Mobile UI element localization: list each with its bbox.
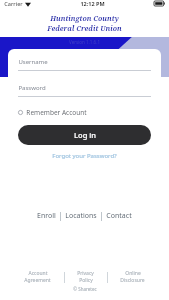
button[interactable]: Remember Account bbox=[18, 108, 87, 117]
button[interactable]: Privacy bbox=[77, 270, 94, 284]
staticText: Account bbox=[28, 270, 48, 277]
staticText: Disclosure bbox=[120, 277, 145, 284]
button[interactable]: Log in bbox=[18, 125, 151, 145]
staticText: Log in bbox=[74, 130, 96, 140]
staticText: Online bbox=[125, 270, 141, 277]
other: Battery bbox=[154, 1, 165, 6]
staticText: Carrier bbox=[4, 0, 23, 7]
staticText: Enroll bbox=[37, 211, 56, 221]
staticText: Locations bbox=[65, 211, 97, 221]
staticText: Policy bbox=[79, 277, 93, 284]
button[interactable]: Contact bbox=[102, 211, 136, 221]
staticText: Agreement bbox=[24, 277, 51, 284]
staticText: Huntington County bbox=[50, 14, 119, 24]
button[interactable]: Locations bbox=[61, 211, 101, 221]
staticText: © Sharetec bbox=[73, 286, 97, 292]
staticText: Password bbox=[18, 84, 46, 92]
staticText: Version 1.1.6.1 bbox=[69, 39, 100, 45]
staticText: 12:12 PM bbox=[80, 0, 105, 7]
button[interactable]: Forgot your Password? bbox=[52, 152, 117, 160]
other: Wi-Fi bbox=[25, 1, 31, 7]
button[interactable]: Online bbox=[120, 270, 145, 284]
staticText: Forgot your Password? bbox=[52, 152, 117, 160]
staticText: Contact bbox=[106, 211, 132, 221]
button[interactable]: Enroll bbox=[33, 211, 60, 221]
staticText: Username bbox=[18, 58, 48, 66]
staticText: Privacy bbox=[77, 270, 94, 277]
staticText: Federal Credit Union bbox=[47, 24, 122, 34]
button[interactable]: Account bbox=[24, 270, 51, 284]
staticText: Remember Account bbox=[26, 108, 87, 117]
